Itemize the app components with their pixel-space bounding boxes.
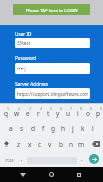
staticText: e [26,109,30,118]
staticText: a [9,124,13,133]
button[interactable]: k [78,120,88,136]
staticText: y [56,109,60,118]
button[interactable]: 33test [15,38,90,48]
button[interactable]: , [18,152,26,168]
staticText: Please TAP here to LOGIN [26,7,78,13]
button[interactable]: 1 [0,104,11,120]
staticText: r [37,109,40,118]
staticText: User ID [15,31,32,37]
staticText: f [42,124,45,133]
staticText: u [66,109,71,118]
button[interactable]: d [27,120,38,136]
button[interactable]: g [48,120,58,136]
button[interactable]: f [38,120,48,136]
staticText: m [78,140,85,149]
staticText: 1 [7,106,10,111]
staticText: ?123 [5,158,14,163]
staticText: d [31,124,35,133]
staticText: https://support.slingsoftware.com/g [17,91,88,97]
button[interactable]: . [78,152,86,168]
staticText: l [92,124,94,133]
staticText: t [47,109,50,118]
button[interactable]: ?123 [0,152,18,168]
staticText: 33test [17,40,31,46]
button[interactable]: Backspace [88,136,103,152]
staticText: k [81,124,85,133]
staticText: 8 [80,106,83,111]
staticText: s [20,124,24,133]
staticText: i [77,109,79,118]
staticText: 9 [90,106,93,111]
staticText: g [51,124,55,133]
staticText: 2 [18,106,21,111]
staticText: z [17,140,21,149]
button[interactable]: 4 [33,104,43,120]
staticText: 6 [60,106,63,111]
staticText: Password [15,55,37,61]
staticText: 7 [70,106,73,111]
button[interactable]: n [66,136,76,152]
staticText: 4 [40,106,43,111]
button[interactable]: 9 [83,104,93,120]
staticText: j [72,124,74,133]
staticText: , [21,155,23,163]
staticText: n [69,140,74,149]
button[interactable]: ••••| [15,63,90,74]
staticText: p [96,109,100,118]
staticText: x [28,140,32,149]
staticText: 0 [100,106,103,111]
staticText: c [38,140,42,149]
button[interactable]: 0 [93,104,103,120]
staticText: 5 [50,106,53,111]
staticText: v [48,140,52,149]
button[interactable]: h [58,120,68,136]
button[interactable]: a [5,120,16,136]
button[interactable]: https://support.slingsoftware.com/g [15,88,90,99]
staticText: 3 [29,106,32,111]
staticText: . [81,155,83,163]
button[interactable]: j [68,120,78,136]
staticText: b [59,140,63,149]
button[interactable]: 2 [11,104,22,120]
button[interactable]: Enter [89,154,99,164]
button[interactable]: v [45,136,55,152]
button[interactable]: z [14,136,24,152]
staticText: w [14,109,20,118]
button[interactable]: x [25,136,35,152]
button[interactable]: 6 [53,104,63,120]
button[interactable]: Back [13,167,33,182]
staticText: h [61,124,66,133]
button[interactable]: Please TAP here to LOGIN [13,4,90,15]
staticText: q [4,109,8,118]
button[interactable]: m [76,136,86,152]
button[interactable]: Recent apps [69,167,89,182]
staticText: ••••| [17,66,27,72]
button[interactable]: 3 [22,104,33,120]
staticText: Server Address [15,81,49,87]
button[interactable]: b [56,136,66,152]
button[interactable]: l [88,120,98,136]
staticText: o [86,109,90,118]
button[interactable]: Home [41,167,61,182]
button[interactable]: c [35,136,45,152]
button[interactable]: Shift [0,136,12,152]
button[interactable]: 8 [73,104,83,120]
button[interactable]: s [16,120,27,136]
button[interactable]: 7 [63,104,73,120]
button[interactable]: 5 [43,104,53,120]
